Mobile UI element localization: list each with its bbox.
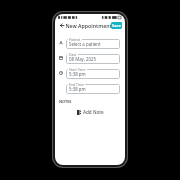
staticText: Save xyxy=(112,23,122,28)
button[interactable]: 08 May, 2025 xyxy=(66,52,120,64)
button[interactable]: Save xyxy=(111,22,122,29)
staticText: 5:38 pm xyxy=(69,86,86,92)
staticText: Select a patient xyxy=(69,41,101,47)
staticText: Add Note xyxy=(83,109,104,115)
staticText: NOTES xyxy=(59,99,72,104)
button[interactable]: 5:38 pm xyxy=(66,67,120,79)
button[interactable]: 5:38 pm xyxy=(66,82,120,94)
button[interactable]: Add Note xyxy=(75,108,106,116)
staticText: 5:38 pm xyxy=(69,71,86,77)
staticText: Date xyxy=(69,52,77,57)
button[interactable]: Select a patient xyxy=(66,37,120,49)
staticText: Patient xyxy=(69,37,81,42)
staticText: End Time xyxy=(69,82,84,87)
staticText: 08 May, 2025 xyxy=(69,56,97,62)
staticText: New Appointment xyxy=(65,22,112,29)
staticText: Start Time xyxy=(69,67,86,72)
button[interactable]: Back xyxy=(57,21,66,30)
